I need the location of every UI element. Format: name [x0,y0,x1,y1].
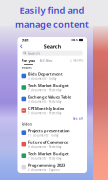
staticText: Folders [21,123,31,126]
staticText: 11 documents · Today [28,134,58,137]
staticText: Tech Market Budget [28,151,69,156]
button[interactable]: For you [21,58,35,65]
staticText: 7 documents · Yesterday [28,157,61,160]
button[interactable]: See all [69,116,87,121]
staticText: Future of Commerce [28,140,68,145]
staticText: All files [39,58,52,63]
button[interactable]: All files [35,58,52,65]
staticText: Tech Market Budget [28,83,69,88]
staticText: Programming 2023 [28,163,65,168]
staticText: 7 documents · Yesterday [28,88,61,92]
staticText: Search [28,50,40,56]
button[interactable]: Future of Commerce [17,138,87,150]
staticText: CPI Monthly Index [28,106,64,111]
staticText: 2 documents · Caption [28,168,60,172]
staticText: For you [21,58,35,63]
staticText: Bids Department [28,71,63,77]
button[interactable]: Tech Market Budget [17,82,87,93]
staticText: 3 documents · Today [28,77,56,80]
staticText: See all [73,117,83,120]
staticText: 3 documents · Yesterday [28,100,61,103]
button[interactable]: Projects presentation [17,127,87,138]
button[interactable]: Tech Market Budget [17,150,87,161]
staticText: Recent [21,66,31,69]
staticText: Exchange Values Table [28,94,71,100]
staticText: 2 months [70,59,83,62]
staticText: Easily find and [19,4,84,16]
staticText: 9:41 [21,37,28,43]
button[interactable]: PDF [17,105,87,116]
staticText: Search [44,43,61,50]
staticText: PDF [22,110,25,111]
button[interactable]: Programming 2023 [17,161,87,173]
staticText: manage content [15,18,89,30]
staticText: Projects presentation [28,128,70,133]
staticText: 4 documents · Yesterday [28,145,61,149]
button[interactable]: Back [17,43,26,50]
button[interactable]: Exchange Values Table [17,93,87,105]
staticText: 5 documents · Yesterday [28,111,61,115]
button[interactable]: Bids Department [17,70,87,82]
